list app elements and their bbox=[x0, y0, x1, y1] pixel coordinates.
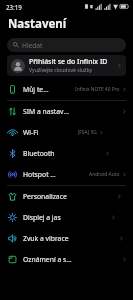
staticText: Oznámení a stavový řádek bbox=[23, 255, 72, 264]
staticText: Wi-Fi bbox=[23, 128, 39, 137]
other: Zvuk a vibrace bbox=[8, 234, 17, 243]
staticText: SIM a nastavení sítě bbox=[23, 107, 72, 116]
button[interactable]: Zvuk a vibrace bbox=[0, 228, 133, 249]
other: Wi-Fi bbox=[8, 128, 17, 137]
staticText: Můj telefon bbox=[23, 85, 49, 94]
staticText: JFSAJ 5G bbox=[78, 129, 97, 136]
button[interactable]: Oznámení a stavový řádek bbox=[0, 249, 133, 270]
staticText: Zvuk a vibrace bbox=[23, 234, 69, 243]
staticText: Personalizace bbox=[23, 192, 67, 201]
staticText: Nastavení bbox=[8, 16, 67, 32]
button[interactable]: Hledat bbox=[7, 38, 126, 52]
staticText: Využívejte cloudové služby bbox=[29, 67, 93, 74]
other: SIM a nastavení sítě bbox=[8, 107, 17, 116]
staticText: Displej a jas bbox=[23, 213, 61, 222]
staticText: 23:19 bbox=[6, 3, 22, 11]
button[interactable]: Můj telefon bbox=[0, 79, 133, 100]
staticText: Hotspot a připojení bbox=[23, 170, 56, 179]
staticText: Bluetooth bbox=[23, 149, 55, 158]
other: Oznámení a stavový řádek bbox=[8, 255, 17, 264]
button[interactable]: Hotspot a připojení bbox=[0, 164, 133, 185]
other: Bluetooth bbox=[8, 149, 17, 158]
staticText: Přihlásit se do Infinix ID bbox=[29, 57, 108, 66]
staticText: Infinix NOTE 40 Pro bbox=[75, 86, 120, 93]
button[interactable]: SIM a nastavení sítě bbox=[0, 101, 133, 122]
other: Hotspot a připojení bbox=[8, 170, 17, 179]
staticText: Android Auto bbox=[89, 171, 120, 178]
other: Personalizace bbox=[8, 192, 17, 201]
button[interactable]: Bluetooth bbox=[0, 143, 133, 164]
staticText: Hledat bbox=[22, 41, 43, 50]
button[interactable]: Přihlásit se do Infinix ID bbox=[7, 55, 126, 76]
other: Můj telefon bbox=[8, 85, 17, 94]
button[interactable]: Wi-Fi bbox=[0, 122, 133, 143]
button[interactable]: Displej a jas bbox=[0, 207, 133, 228]
other: Displej a jas bbox=[8, 213, 17, 222]
button[interactable]: Personalizace bbox=[0, 186, 133, 207]
